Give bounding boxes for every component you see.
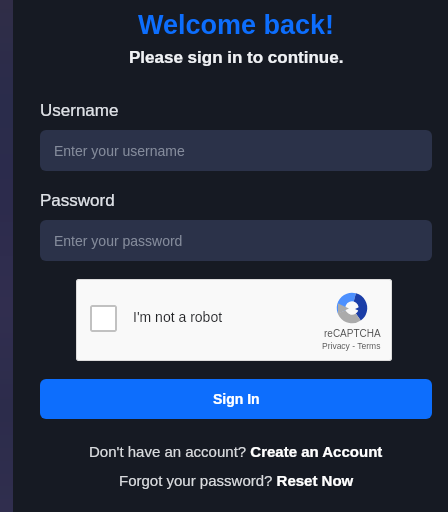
staticText: I'm not a robot <box>133 309 223 325</box>
staticText: Enter your username <box>54 143 185 159</box>
staticText: reCAPTCHA <box>324 328 381 339</box>
staticText: Privacy - Terms <box>322 341 381 350</box>
button[interactable]: Enter your password <box>40 220 432 261</box>
staticText: Please sign in to continue. <box>129 48 344 67</box>
staticText: Password <box>40 191 115 210</box>
button[interactable]: Don't have an account? Create an Account <box>40 443 432 460</box>
staticText: Sign In <box>213 391 260 407</box>
button[interactable]: Forgot your password? Reset Now <box>40 472 432 489</box>
staticText: Forgot your password? Reset Now <box>119 472 354 489</box>
staticText: Enter your password <box>54 233 183 249</box>
button[interactable]: Sign In <box>40 379 432 419</box>
staticText: Don't have an account? Create an Account <box>89 443 383 460</box>
staticText: Username <box>40 101 119 120</box>
staticText: Welcome back! <box>138 10 335 40</box>
button[interactable] <box>90 305 117 332</box>
button[interactable]: Enter your username <box>40 130 432 171</box>
